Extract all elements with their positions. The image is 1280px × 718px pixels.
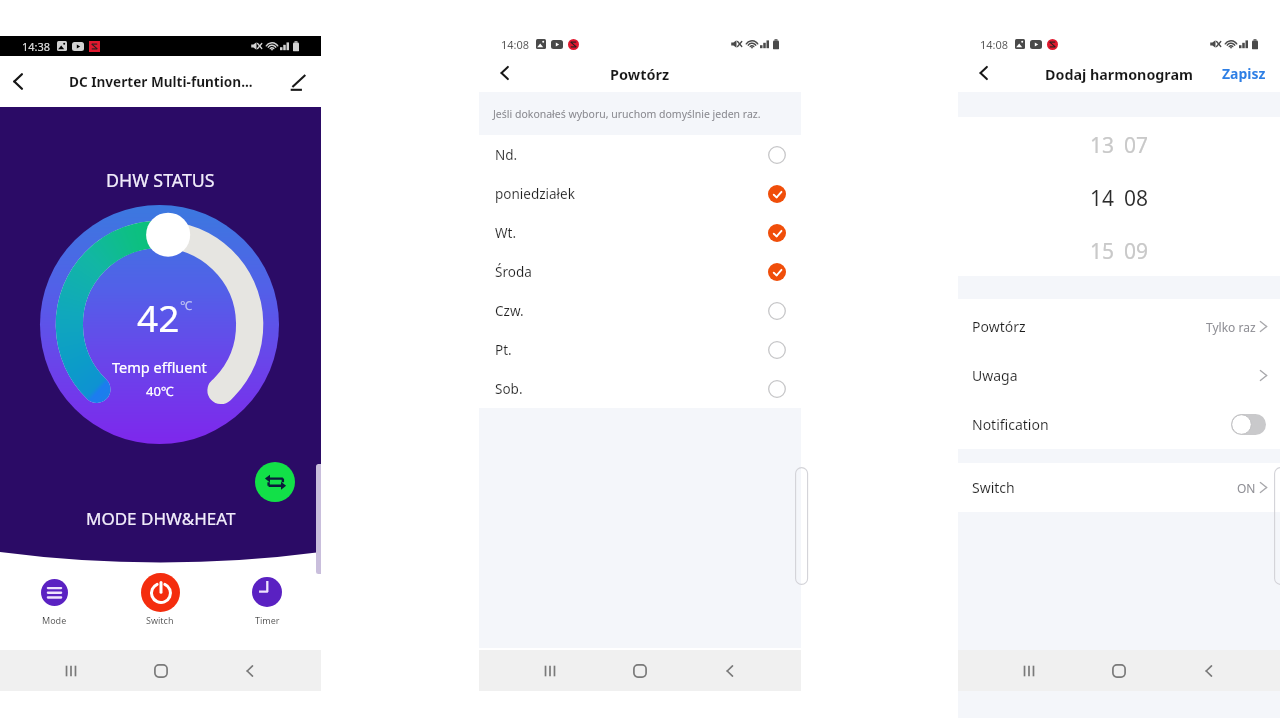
staticText: Timer [255,614,280,626]
button[interactable]: Mode [18,570,90,626]
staticText: 42 [137,292,180,342]
button[interactable]: Recents [1008,650,1050,691]
staticText: Powtórz [610,64,670,84]
staticText: ON [1237,480,1256,496]
button[interactable]: Switch mode [255,462,295,502]
staticText: Switch [972,478,1015,497]
button[interactable]: poniedziałek [479,174,801,213]
button[interactable]: Back [1188,650,1230,691]
button[interactable]: Home [1098,650,1140,691]
button[interactable]: Recents [529,650,571,691]
button[interactable]: Pt. [479,330,801,369]
button[interactable]: Uwaga [958,351,1280,400]
button[interactable]: Recents [50,650,92,691]
staticText: Temp effluent [112,357,207,377]
staticText: Środa [495,263,532,281]
button[interactable]: Home [619,650,661,691]
staticText: 14:08 [980,37,1009,52]
button[interactable]: Nd. [479,135,801,174]
button[interactable]: Powtórz [958,302,1280,351]
staticText: Sob. [495,380,523,398]
button[interactable]: Back [491,59,519,87]
staticText: Zapisz [1222,64,1266,83]
staticText: Mode [42,614,67,626]
staticText: Jeśli dokonałeś wyboru, uruchom domyślni… [493,107,761,121]
button[interactable]: Notification [958,400,1280,449]
staticText: poniedziałek [495,185,575,203]
staticText: 14:38 [22,39,51,54]
staticText: Notification [972,415,1049,434]
staticText: Dodaj harmonogram [1045,65,1193,84]
button[interactable]: Back [970,59,998,87]
button[interactable]: Home [140,650,182,691]
staticText: MODE DHW&HEAT [86,507,236,530]
button[interactable]: Switch [958,463,1280,512]
button[interactable]: Środa [479,252,801,291]
staticText: 15 [1090,237,1115,266]
staticText: 08 [1124,184,1149,213]
staticText: 09 [1124,237,1149,266]
staticText: 13 [1090,131,1115,160]
staticText: DC Inverter Multi-funtion... [69,72,253,91]
staticText: 40℃ [146,382,174,400]
staticText: Czw. [495,302,524,320]
button[interactable]: Switch [124,570,196,626]
button[interactable]: Back [709,650,751,691]
staticText: 14:08 [501,37,530,52]
button[interactable]: Timer [231,570,303,626]
staticText: Uwaga [972,366,1018,385]
button[interactable]: Zapisz [1218,60,1270,87]
staticText: Wt. [495,224,517,242]
staticText: Powtórz [972,317,1026,336]
staticText: Tylko raz [1206,319,1256,335]
staticText: Switch [146,614,174,626]
staticText: 07 [1124,131,1149,160]
button[interactable]: Sob. [479,369,801,408]
button[interactable]: Back [229,650,271,691]
staticText: DHW STATUS [106,168,215,192]
button[interactable]: Edit [282,67,312,97]
staticText: ℃ [180,297,192,313]
button[interactable]: Czw. [479,291,801,330]
button[interactable]: Back [2,65,35,98]
staticText: Nd. [495,146,518,164]
staticText: 14 [1090,184,1115,213]
button[interactable]: Wt. [479,213,801,252]
staticText: Pt. [495,341,512,359]
